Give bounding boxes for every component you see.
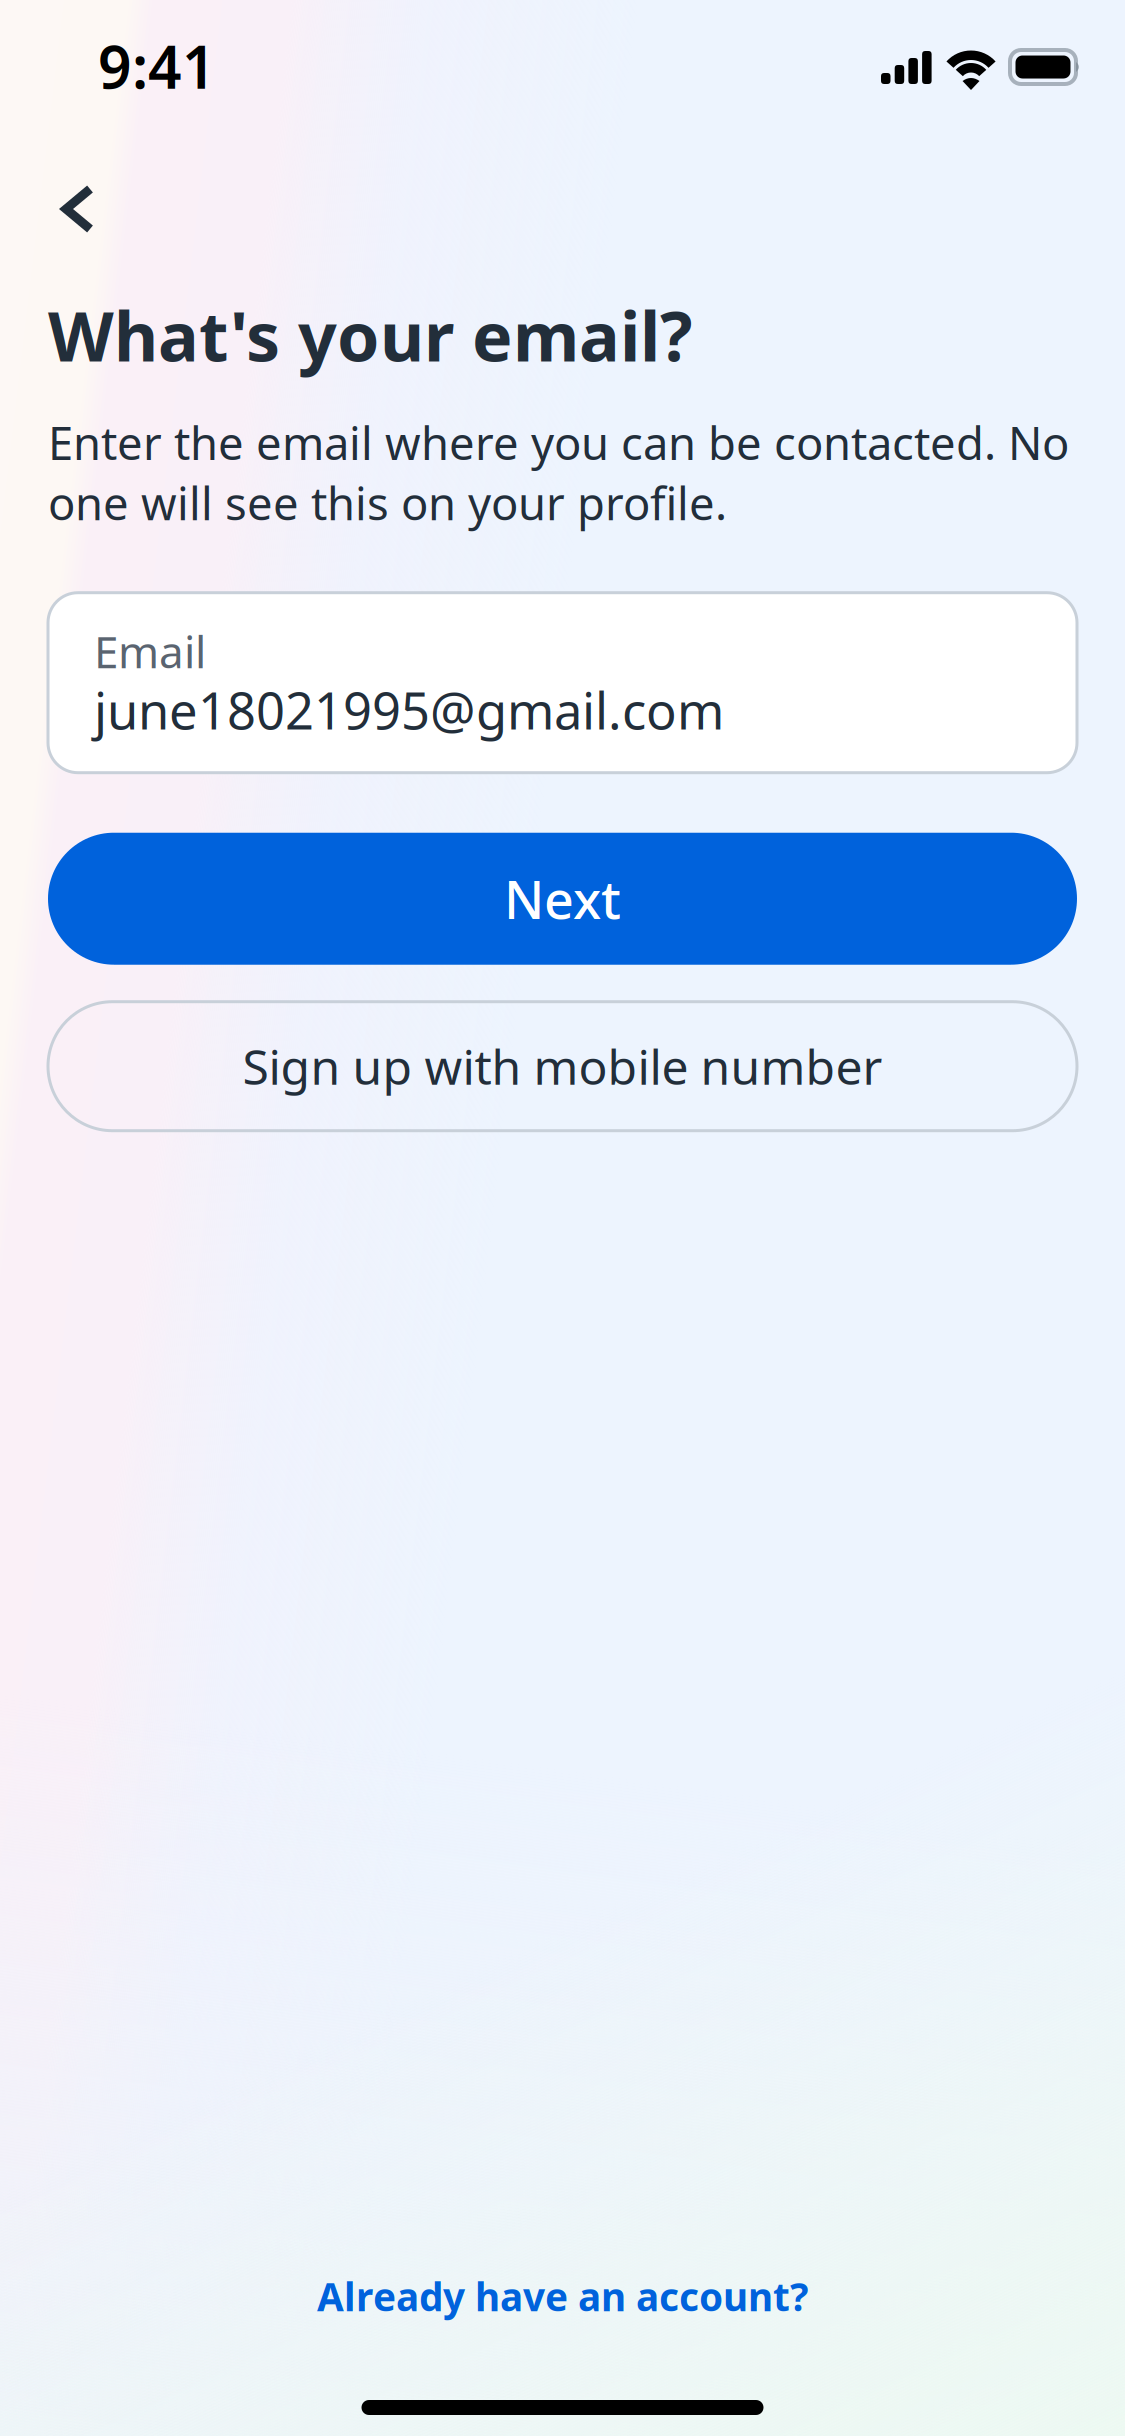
staticText: Sign up with mobile number — [242, 1034, 882, 1098]
button[interactable]: Back — [0, 164, 138, 254]
staticText: Email — [94, 622, 206, 680]
staticText: Already have an account? — [317, 2271, 808, 2322]
button[interactable]: Already have an account? — [0, 2234, 1125, 2341]
staticText: Enter the email where you can be contact… — [48, 412, 1069, 533]
staticText: Next — [504, 864, 621, 933]
button[interactable]: Email, june18021995@gmail.com — [0, 593, 1125, 773]
button[interactable]: Sign up with mobile number — [0, 1002, 1125, 1131]
staticText: june18021995@gmail.com — [94, 676, 724, 744]
staticText: 9:41 — [98, 27, 216, 105]
button[interactable]: Next — [0, 833, 1125, 965]
staticText: What's your email? — [48, 290, 692, 380]
